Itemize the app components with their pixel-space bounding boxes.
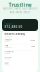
- staticText: wonder web operations: [3, 7, 37, 10]
- button[interactable]: Groceries: [4, 56, 35, 61]
- staticText: Today: [4, 41, 9, 42]
- staticText: Groceries: [4, 56, 12, 58]
- staticText: Monday: [4, 53, 10, 54]
- staticText: Total balance: [4, 23, 13, 25]
- staticText: Apple Store: [4, 39, 12, 41]
- button[interactable]: Total balance: [2, 19, 38, 31]
- staticText: Yesterday: [4, 47, 12, 48]
- staticText: Transfer out: [4, 51, 13, 53]
- button[interactable]: Transfer out: [4, 51, 35, 55]
- staticText: Friday: [4, 64, 9, 66]
- staticText: -$9.99: [31, 45, 35, 47]
- staticText: -$24.00: [30, 39, 35, 41]
- button[interactable]: Salary: [4, 62, 35, 67]
- staticText: Sunday: [4, 58, 10, 60]
- staticText: and much more: [9, 10, 30, 14]
- staticText: $12,480.50: [4, 25, 22, 29]
- button[interactable]: Apple Store: [4, 39, 35, 43]
- staticText: Recent activity: [4, 32, 24, 36]
- staticText: Spotify: [4, 45, 8, 47]
- button[interactable]: Spotify: [4, 45, 35, 49]
- staticText: Trustline: [8, 1, 31, 8]
- staticText: Last 7 days: [4, 36, 12, 38]
- staticText: Salary: [4, 62, 9, 64]
